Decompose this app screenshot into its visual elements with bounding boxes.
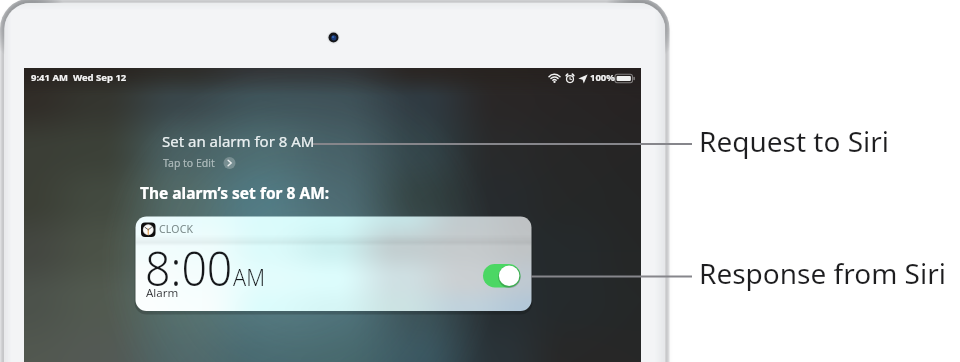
staticText: 8:00 bbox=[145, 235, 232, 300]
staticText: Response from Siri bbox=[699, 254, 946, 292]
staticText: AM bbox=[233, 260, 265, 293]
button[interactable]: Alarm toggle, on bbox=[483, 264, 521, 288]
staticText: Request to Siri bbox=[699, 122, 890, 160]
button[interactable]: Set an alarm for 8 AM bbox=[162, 131, 315, 151]
staticText: The alarm’s set for 8 AM: bbox=[140, 182, 330, 203]
staticText: 100% bbox=[590, 71, 615, 84]
staticText: Tap to Edit bbox=[163, 156, 215, 170]
staticText: CLOCK bbox=[159, 222, 194, 236]
staticText: Alarm bbox=[146, 285, 179, 301]
button[interactable]: Tap to Edit bbox=[163, 156, 215, 170]
staticText: Set an alarm for 8 AM bbox=[162, 131, 315, 151]
staticText: 9:41 AM Wed Sep 12 bbox=[31, 71, 127, 84]
